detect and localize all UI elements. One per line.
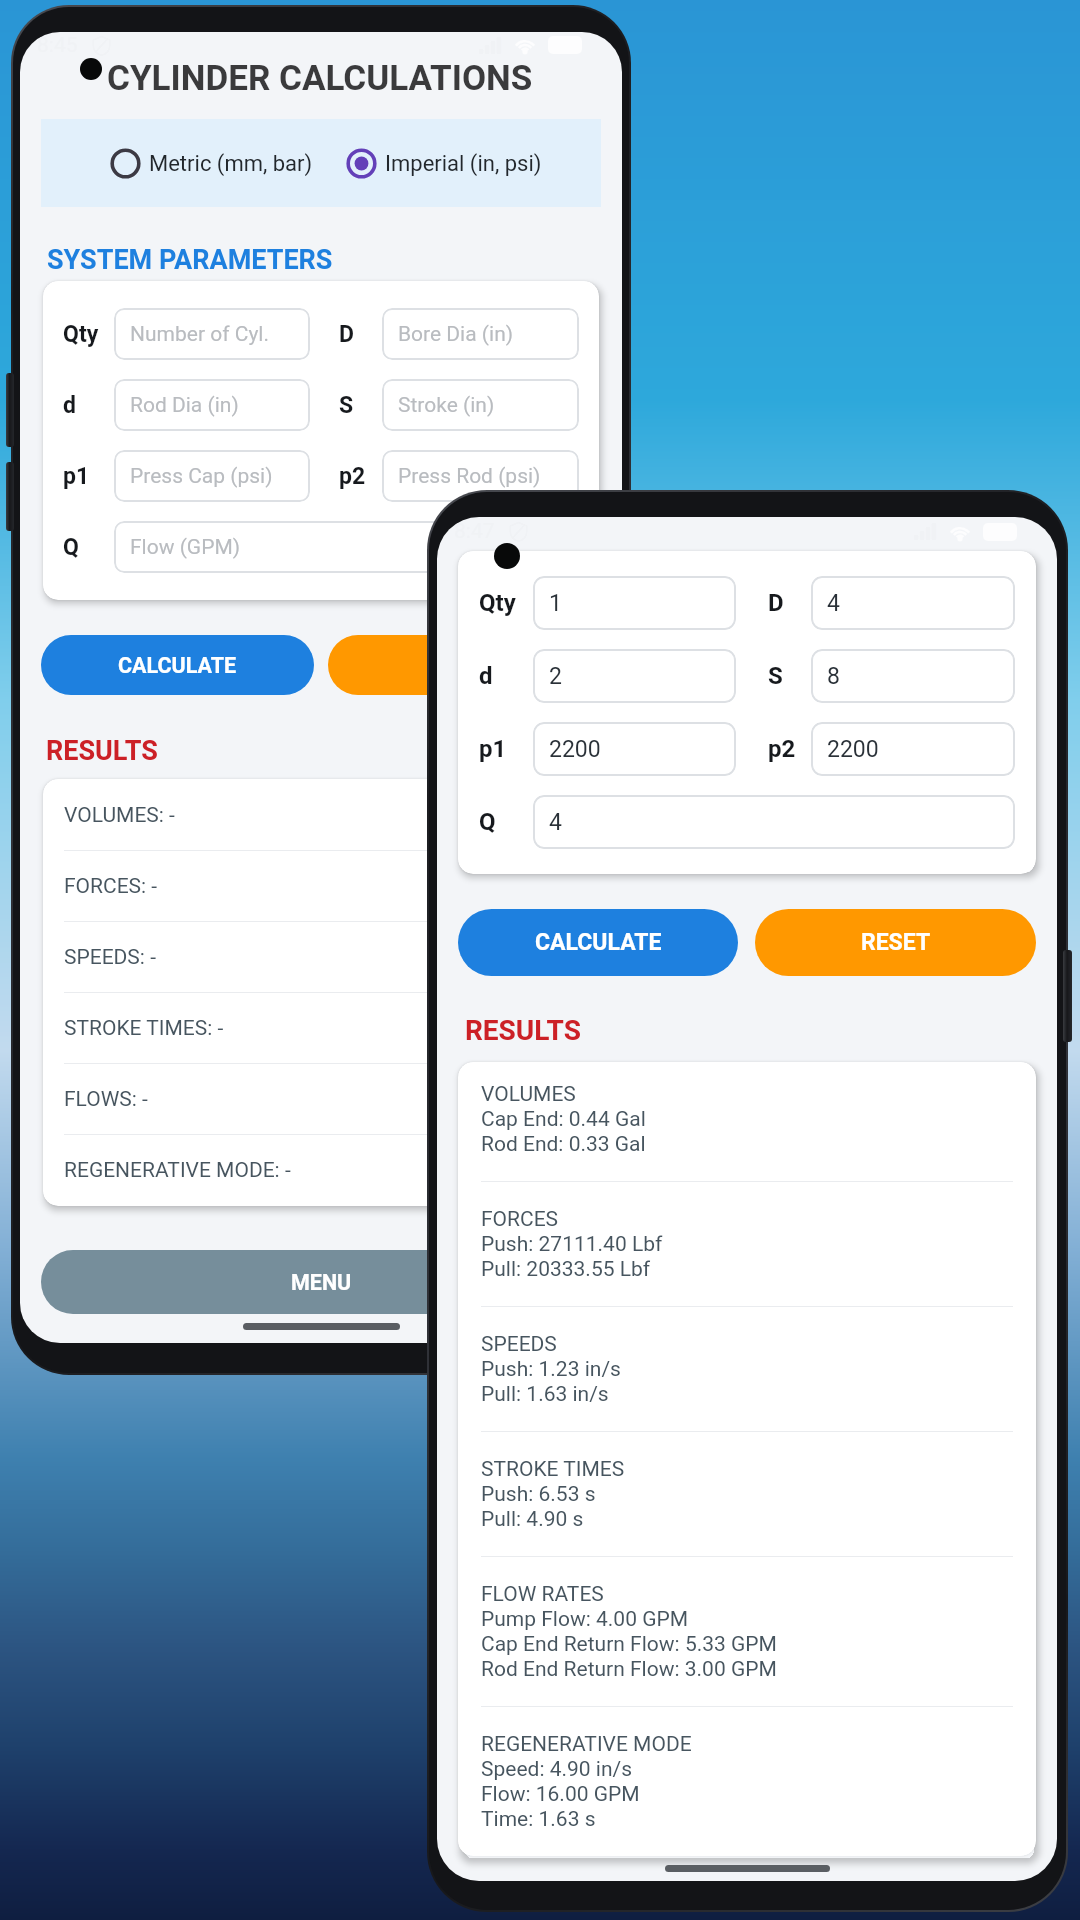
staticText: Time: 1.63 s (481, 1807, 596, 1832)
staticText: 8 (827, 663, 840, 690)
staticText: Press Cap (psi) (130, 464, 273, 489)
staticText: Rod End Return Flow: 3.00 GPM (481, 1657, 777, 1682)
staticText: Pull: 1.63 in/s (481, 1382, 609, 1407)
staticText: d (63, 392, 76, 419)
staticText: STROKE TIMES (481, 1457, 625, 1482)
button[interactable]: Rod Dia (in) (114, 379, 310, 431)
staticText: Qty (63, 321, 99, 348)
staticText: Push: 6.53 s (481, 1482, 596, 1507)
staticText: p1 (479, 735, 507, 763)
staticText: Speed: 4.90 in/s (481, 1757, 633, 1782)
button[interactable]: 4 (811, 576, 1015, 630)
staticText: RESET (861, 929, 931, 956)
staticText: RESULTS (465, 1014, 581, 1047)
button[interactable]: 2 (533, 649, 736, 703)
button[interactable]: Stroke (in) (382, 379, 579, 431)
staticText: Metric (mm, bar) (149, 151, 313, 177)
staticText: Push: 1.23 in/s (481, 1357, 621, 1382)
staticText: CALCULATE (535, 929, 662, 956)
staticText: SPEEDS (481, 1332, 557, 1357)
staticText: RESET (432, 653, 497, 678)
staticText: STROKE TIMES: - (64, 1016, 224, 1041)
staticText: MENU (291, 1270, 352, 1295)
staticText: Push: 27111.40 Lbf (481, 1232, 663, 1257)
button[interactable]: Number of Cyl. (114, 308, 310, 360)
staticText: Cap End: 0.44 Gal (481, 1107, 646, 1132)
staticText: Press Rod (psi) (398, 464, 541, 489)
staticText: Flow: 16.00 GPM (481, 1782, 640, 1807)
staticText: SYSTEM PARAMETERS (47, 244, 333, 276)
staticText: p2 (768, 735, 796, 763)
staticText: CALCULATE (118, 653, 237, 678)
button[interactable]: Imperial (in, psi) (346, 148, 542, 179)
staticText: Pull: 20333.55 Lbf (481, 1257, 651, 1282)
staticText: p2 (339, 463, 366, 490)
staticText: d (479, 662, 493, 690)
button[interactable]: 1 (533, 576, 736, 630)
staticText: FORCES (481, 1207, 559, 1232)
button[interactable]: RESET (755, 909, 1036, 976)
button[interactable]: CALCULATE (41, 635, 314, 695)
staticText: FLOW RATES (481, 1582, 604, 1607)
staticText: 2 (549, 663, 562, 690)
staticText: Number of Cyl. (130, 322, 269, 347)
staticText: VOLUMES: - (64, 803, 175, 828)
button[interactable]: 2200 (533, 722, 736, 776)
staticText: D (339, 321, 354, 348)
button[interactable]: FLOWS: - (64, 1064, 578, 1134)
staticText: p1 (63, 463, 90, 490)
staticText: Flow (GPM) (130, 535, 241, 560)
button[interactable]: 2200 (811, 722, 1015, 776)
staticText: Stroke (in) (398, 393, 495, 418)
staticText: Q (479, 808, 496, 836)
staticText: CYLINDER CALCULATIONS (107, 58, 533, 99)
staticText: Pull: 4.90 s (481, 1507, 584, 1532)
staticText: Q (63, 534, 79, 561)
staticText: 8:45 (37, 33, 78, 58)
button[interactable]: VOLUMES: - (64, 780, 578, 850)
staticText: REGENERATIVE MODE: - (64, 1158, 291, 1183)
button[interactable]: Metric (mm, bar) (110, 148, 313, 179)
button[interactable]: FORCES: - (64, 851, 578, 921)
staticText: 4 (549, 809, 562, 836)
staticText: 2200 (549, 736, 601, 763)
button[interactable]: Bore Dia (in) (382, 308, 579, 360)
staticText: 4 (827, 590, 840, 617)
button[interactable]: Press Cap (psi) (114, 450, 310, 502)
staticText: SPEEDS: - (64, 945, 156, 970)
staticText: Cap End Return Flow: 5.33 GPM (481, 1632, 777, 1657)
staticText: Rod Dia (in) (130, 393, 239, 418)
staticText: S (768, 662, 783, 690)
button[interactable]: REGENERATIVE MODE: - (64, 1135, 578, 1205)
staticText: Qty (479, 589, 516, 617)
button[interactable]: Flow (GPM) (114, 521, 579, 573)
staticText: S (339, 392, 354, 419)
staticText: REGENERATIVE MODE (481, 1732, 692, 1757)
button[interactable]: MENU (41, 1250, 601, 1314)
staticText: 2200 (827, 736, 879, 763)
staticText: Bore Dia (in) (398, 322, 514, 347)
button[interactable]: 4 (533, 795, 1015, 849)
button[interactable]: STROKE TIMES: - (64, 993, 578, 1063)
button[interactable]: Press Rod (psi) (382, 450, 579, 502)
staticText: 1 (549, 590, 562, 617)
staticText: 8:47 (454, 519, 495, 544)
staticText: VOLUMES (481, 1082, 576, 1107)
button[interactable]: 8 (811, 649, 1015, 703)
button[interactable]: RESET (328, 635, 601, 695)
staticText: FORCES: - (64, 874, 158, 899)
staticText: D (768, 589, 784, 617)
staticText: RESULTS (46, 735, 158, 767)
staticText: Pump Flow: 4.00 GPM (481, 1607, 689, 1632)
staticText: Rod End: 0.33 Gal (481, 1132, 646, 1157)
button[interactable]: CALCULATE (458, 909, 738, 976)
button[interactable]: SPEEDS: - (64, 922, 578, 992)
staticText: Imperial (in, psi) (385, 151, 542, 177)
staticText: FLOWS: - (64, 1087, 148, 1112)
